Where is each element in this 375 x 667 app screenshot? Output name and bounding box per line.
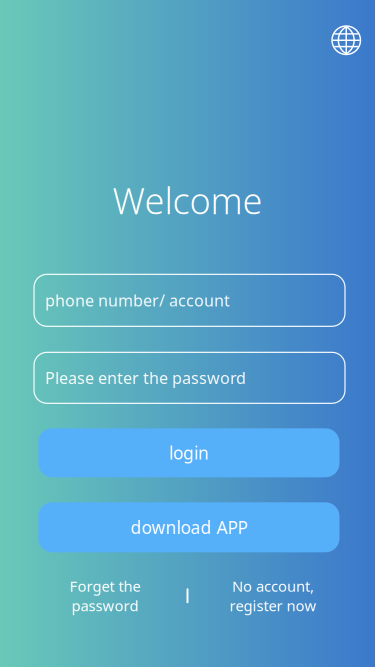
button[interactable]: Language [324, 18, 368, 62]
staticText: No account, [232, 576, 314, 596]
staticText: password [71, 596, 138, 615]
staticText: register now [229, 596, 316, 615]
button[interactable]: login [38, 428, 339, 477]
staticText: Welcome [112, 176, 262, 224]
staticText: phone number/ account [45, 290, 230, 311]
button[interactable]: No account, [191, 576, 354, 615]
button[interactable]: download APP [38, 502, 339, 552]
button[interactable]: phone number/ account [34, 274, 345, 326]
staticText: Forget the [69, 576, 140, 596]
staticText: Please enter the password [45, 367, 246, 388]
staticText: download APP [130, 516, 247, 539]
button[interactable]: Forget the [23, 576, 186, 615]
staticText: login [169, 441, 209, 464]
button[interactable]: Please enter the password [34, 352, 345, 403]
